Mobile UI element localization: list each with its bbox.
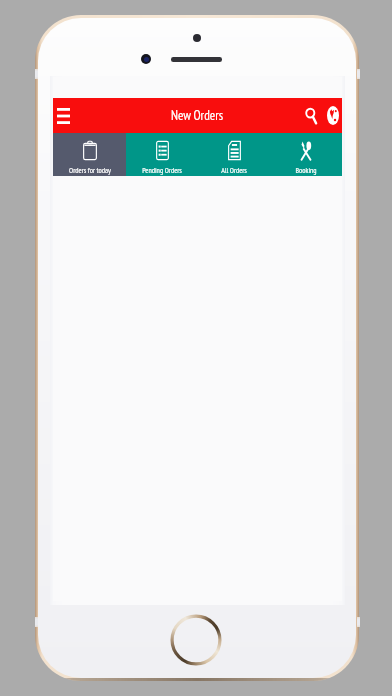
staticText: Orders for today <box>69 165 111 175</box>
button[interactable]: Search <box>299 98 323 133</box>
staticText: New Orders <box>171 107 224 124</box>
button[interactable]: Booking <box>270 133 342 176</box>
button[interactable]: Menu <box>53 98 73 133</box>
staticText: Pending Orders <box>142 165 182 175</box>
button[interactable]: Home <box>170 614 222 666</box>
button[interactable]: Profile <box>323 98 342 133</box>
staticText: Booking <box>295 165 317 175</box>
button[interactable]: Pending Orders <box>126 133 198 176</box>
staticText: All Orders <box>221 165 247 175</box>
button[interactable]: Orders for today <box>53 133 126 176</box>
button[interactable]: All Orders <box>198 133 270 176</box>
